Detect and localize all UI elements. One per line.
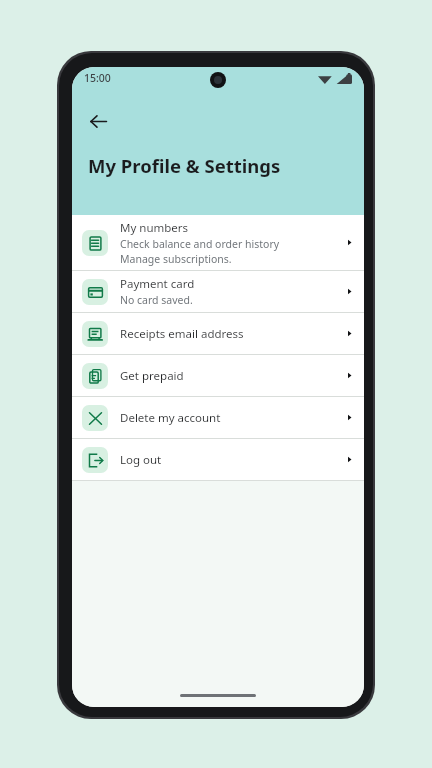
staticText: Receipts email address (120, 326, 244, 342)
button[interactable]: My numbers (72, 215, 364, 270)
staticText: My numbers (120, 220, 189, 236)
staticText: Log out (120, 452, 162, 468)
staticText: My Profile & Settings (88, 153, 281, 178)
staticText: Check balance and order history (120, 237, 280, 251)
staticText: Delete my account (120, 410, 221, 426)
staticText: 15:00 (84, 71, 111, 85)
button[interactable]: Get prepaid (72, 355, 364, 396)
button[interactable]: Payment card (72, 271, 364, 312)
staticText: Payment card (120, 276, 195, 292)
staticText: Manage subscriptions. (120, 252, 232, 266)
staticText: No card saved. (120, 293, 193, 307)
staticText: Get prepaid (120, 368, 184, 384)
button[interactable]: Log out (72, 439, 364, 480)
button[interactable]: Delete my account (72, 397, 364, 438)
button[interactable]: Back (78, 101, 118, 141)
button[interactable]: Receipts email address (72, 313, 364, 354)
